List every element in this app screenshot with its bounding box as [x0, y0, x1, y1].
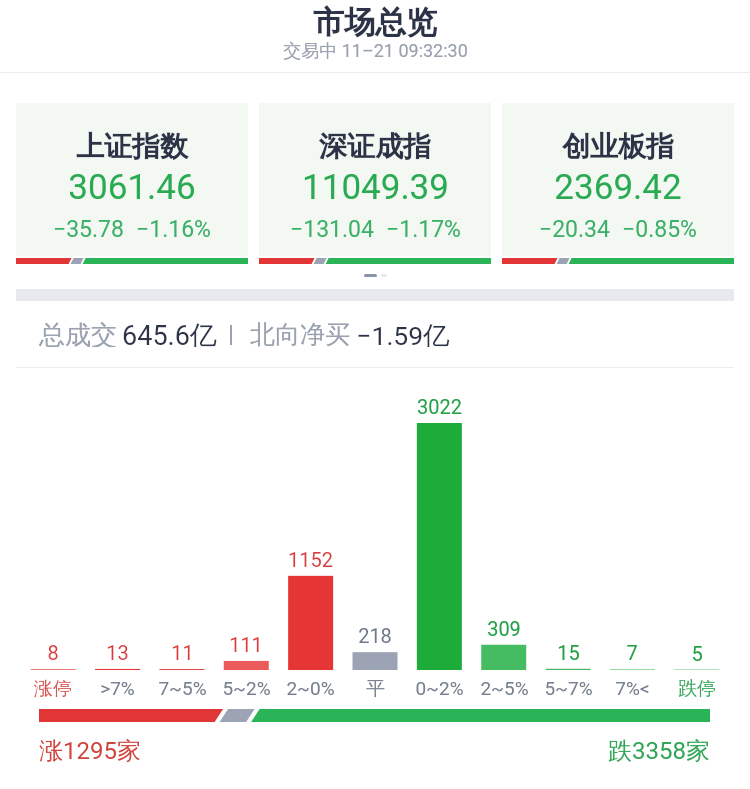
staticText: 218	[358, 624, 392, 647]
staticText: −35.78	[53, 216, 124, 243]
staticText: 创业板指	[562, 129, 674, 164]
staticText: 13	[106, 641, 129, 664]
staticText: 涨1295家	[39, 736, 141, 766]
staticText: 总成交	[39, 319, 117, 347]
staticText: 11049.39	[302, 167, 449, 208]
staticText: 111	[229, 633, 263, 656]
button[interactable]: 深证成指	[259, 103, 491, 264]
staticText: 2~5%	[480, 677, 529, 699]
staticText: −0.85%	[622, 216, 697, 243]
staticText: 跌3358家	[608, 736, 710, 766]
staticText: 上证指数	[76, 129, 188, 164]
staticText: −131.04	[290, 216, 374, 243]
staticText: 11	[171, 641, 194, 664]
staticText: 7~5%	[158, 677, 207, 699]
button[interactable]: 创业板指	[502, 103, 734, 264]
button[interactable]: 上证指数	[16, 103, 248, 264]
staticText: 平	[366, 677, 385, 701]
staticText: 15	[557, 641, 580, 664]
staticText: 1152	[288, 548, 333, 571]
staticText: >7%	[100, 677, 135, 699]
staticText: 交易中 11–21 09:32:30	[283, 40, 468, 63]
staticText: −20.34	[539, 216, 610, 243]
staticText: 深证成指	[319, 129, 431, 164]
staticText: 2369.42	[554, 167, 682, 208]
staticText: 309	[487, 617, 521, 640]
staticText: −1.17%	[386, 216, 461, 243]
staticText: 5~2%	[222, 677, 271, 699]
staticText: 0~2%	[415, 677, 464, 699]
staticText: 5	[691, 642, 703, 665]
staticText: −1.16%	[136, 216, 211, 243]
staticText: 5~7%	[544, 677, 593, 699]
staticText: 北向净买	[250, 319, 350, 347]
staticText: 跌停	[678, 677, 716, 701]
staticText: 645.6亿	[122, 319, 217, 347]
staticText: 7	[626, 641, 638, 664]
staticText: 市场总览	[313, 3, 437, 42]
staticText: −1.59亿	[356, 319, 450, 347]
staticText: 涨停	[34, 677, 72, 701]
staticText: 2~0%	[286, 677, 335, 699]
staticText: 8	[47, 641, 59, 664]
staticText: 3061.46	[68, 167, 196, 208]
staticText: 3022	[417, 395, 462, 418]
staticText: 7%<	[615, 677, 650, 699]
button[interactable]: 总成交	[39, 319, 750, 347]
